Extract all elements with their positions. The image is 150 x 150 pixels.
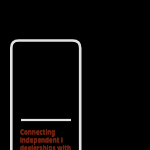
staticText: independent i [20,135,63,143]
staticText: Connecting [20,128,56,136]
staticText: dealerships with [20,144,72,150]
staticText: independent i [20,136,63,144]
staticText: Connecting [20,128,56,136]
staticText: dealerships with [20,144,72,150]
staticText: independent i [20,136,63,144]
staticText: dealerships with [20,143,72,150]
staticText: independent i [20,135,63,143]
staticText: Connecting [20,127,56,135]
staticText: Connecting [20,127,56,135]
staticText: dealerships with [20,143,72,150]
